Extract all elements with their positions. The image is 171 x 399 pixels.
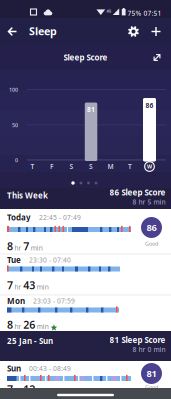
staticText: This Week <box>7 190 48 201</box>
staticText: 8 hr 5 min <box>132 197 165 206</box>
staticText: min <box>37 282 49 291</box>
button[interactable] <box>151 52 162 63</box>
staticText: 8 hr 0 min <box>132 345 165 354</box>
staticText: Sleep Score <box>63 52 107 63</box>
staticText: S <box>89 162 93 171</box>
staticText: W <box>147 163 152 170</box>
staticText: 8 <box>7 239 13 253</box>
staticText: T <box>30 162 34 171</box>
button[interactable] <box>143 98 156 161</box>
staticText: 81 <box>87 105 95 114</box>
staticText: Sleep <box>29 24 57 38</box>
staticText: Tue <box>7 254 21 265</box>
staticText: Today <box>7 212 31 223</box>
button[interactable] <box>85 102 97 161</box>
staticText: 75% 07:51 <box>127 9 161 18</box>
staticText: 12 <box>23 382 35 396</box>
staticText: 0 <box>15 157 18 164</box>
staticText: T <box>128 162 132 171</box>
button[interactable] <box>0 361 171 388</box>
staticText: hr <box>15 243 22 252</box>
staticText: 7 <box>23 239 29 253</box>
staticText: F <box>50 162 54 171</box>
button[interactable] <box>0 295 171 331</box>
button[interactable] <box>151 27 160 36</box>
staticText: min <box>37 386 49 395</box>
staticText: 23:30 - 07:40 <box>29 255 71 264</box>
staticText: 81 <box>146 367 156 380</box>
staticText: 23:03 - 07:59 <box>33 296 75 305</box>
staticText: 25 Jan - Sun <box>7 335 53 346</box>
staticText: 86 <box>145 101 153 110</box>
staticText: 7 <box>7 382 13 396</box>
staticText: hr <box>15 386 22 395</box>
button[interactable] <box>0 209 171 254</box>
staticText: 81 Sleep Score <box>109 334 165 345</box>
staticText: Good <box>145 384 158 391</box>
staticText: Mon <box>7 295 25 306</box>
button[interactable] <box>0 0 24 44</box>
staticText: M <box>107 162 113 171</box>
staticText: 43 <box>23 278 35 292</box>
staticText: min <box>37 322 49 331</box>
staticText: 8 <box>7 317 13 332</box>
staticText: 86 Sleep Score <box>109 187 165 198</box>
staticText: min <box>31 243 43 252</box>
button[interactable] <box>123 18 143 44</box>
staticText: 86 <box>146 221 156 234</box>
staticText: hr <box>15 282 22 291</box>
staticText: hr <box>15 322 22 331</box>
staticText: S <box>69 162 73 171</box>
staticText: 22:45 - 07:49 <box>39 213 81 222</box>
button[interactable] <box>143 160 155 172</box>
staticText: Sun <box>7 363 21 374</box>
staticText: Good <box>145 240 158 247</box>
staticText: 00:43 - 08:49 <box>29 364 71 373</box>
staticText: 100 <box>9 86 18 93</box>
button[interactable] <box>0 254 171 295</box>
staticText: 26 <box>23 317 35 332</box>
staticText: 4G <box>106 8 111 14</box>
staticText: 7 <box>7 278 13 292</box>
staticText: 50 <box>12 122 18 129</box>
